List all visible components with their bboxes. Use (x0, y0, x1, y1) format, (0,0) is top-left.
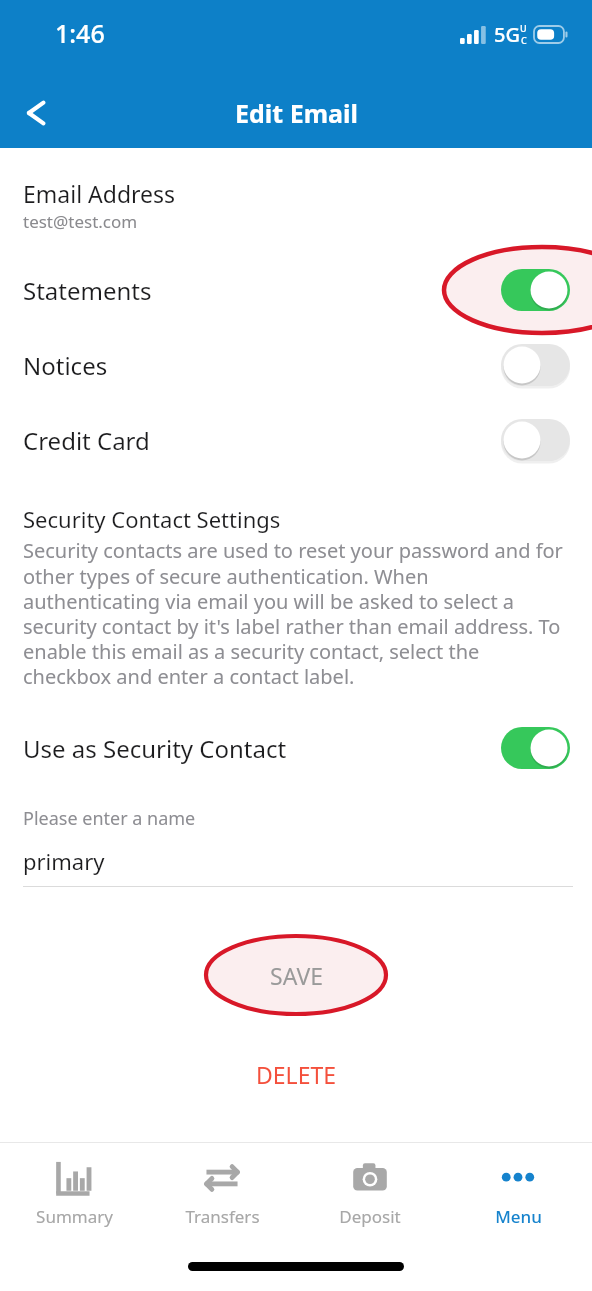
staticText: Please enter a name (23, 806, 196, 831)
staticText: Statements (23, 274, 152, 307)
button[interactable]: DELETE (226, 1049, 366, 1100)
staticText: C (521, 34, 527, 46)
staticText: U (520, 22, 527, 34)
staticText: DELETE (256, 1059, 336, 1090)
button[interactable]: Statements (0, 262, 592, 318)
button[interactable]: Please enter a name (23, 806, 573, 887)
staticText: SAVE (270, 960, 323, 991)
staticText: Credit Card (23, 424, 150, 457)
button[interactable]: Credit Card (0, 412, 592, 468)
button[interactable]: SAVE (240, 946, 353, 1005)
button[interactable]: Back (6, 87, 58, 139)
button[interactable]: Deposit (296, 1143, 444, 1228)
staticText: primary (23, 846, 105, 876)
staticText: test@test.com (23, 210, 138, 233)
staticText: 1:46 (55, 16, 105, 50)
staticText: Deposit (339, 1205, 401, 1228)
button[interactable]: Notices (0, 337, 592, 393)
staticText: 5G (494, 21, 520, 48)
button[interactable]: Transfers (148, 1143, 296, 1228)
staticText: Use as Security Contact (23, 732, 287, 765)
staticText: Security Contact Settings (23, 504, 281, 534)
staticText: Transfers (185, 1205, 260, 1228)
staticText: Notices (23, 349, 108, 382)
staticText: Email Address (23, 178, 176, 209)
button[interactable]: Summary (0, 1143, 148, 1228)
staticText: Security contacts are used to reset your… (23, 537, 570, 689)
staticText: Summary (36, 1205, 113, 1228)
staticText: Edit Email (235, 96, 358, 130)
staticText: Menu (495, 1205, 542, 1228)
button[interactable]: Menu (444, 1143, 592, 1228)
button[interactable]: Use as Security Contact (0, 720, 592, 776)
